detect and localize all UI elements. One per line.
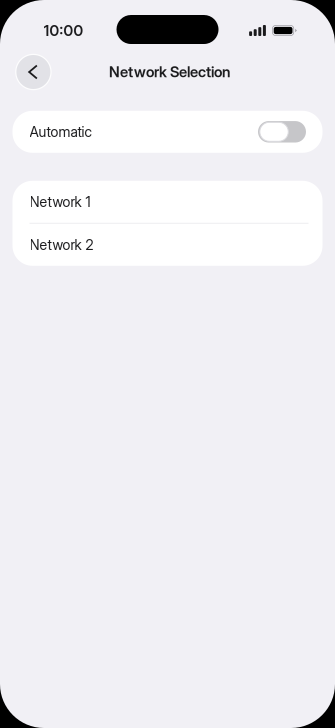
staticText: Network 1 bbox=[29, 193, 90, 210]
button[interactable]: Network 2 bbox=[12, 224, 322, 266]
button[interactable]: Back bbox=[15, 54, 52, 90]
staticText: Network 2 bbox=[29, 236, 93, 253]
staticText: Network Selection bbox=[109, 63, 230, 81]
button[interactable]: Network 1 bbox=[12, 181, 322, 223]
staticText: 10:00 bbox=[43, 21, 83, 40]
button[interactable]: Automatic bbox=[12, 111, 322, 153]
staticText: Automatic bbox=[29, 123, 91, 140]
